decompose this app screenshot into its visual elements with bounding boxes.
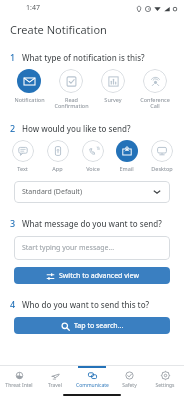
button[interactable]: Travel <box>37 366 73 390</box>
staticText: Conference Call <box>140 96 170 110</box>
staticText: Read Confirmation <box>54 96 89 110</box>
staticText: Notification <box>14 96 45 103</box>
staticText: Switch to advanced view <box>59 271 139 281</box>
button[interactable]: Survey <box>92 69 134 103</box>
button[interactable]: Switch to advanced view <box>14 267 170 284</box>
staticText: Settings <box>155 382 175 389</box>
staticText: Travel <box>48 382 62 389</box>
button[interactable]: App <box>41 140 74 172</box>
staticText: Desktop <box>151 165 173 172</box>
staticText: Who do you want to send this to? <box>22 299 150 310</box>
button[interactable]: Safety <box>111 366 147 390</box>
staticText: Communicate <box>76 382 109 389</box>
staticText: How would you like to send? <box>22 123 131 134</box>
button[interactable]: Standard (Default) <box>14 181 170 203</box>
button[interactable]: Threat Intel <box>1 366 37 390</box>
button[interactable]: Read Confirmation <box>50 69 92 110</box>
staticText: 1:47 <box>26 3 40 13</box>
staticText: Text <box>17 165 28 172</box>
staticText: 3 <box>10 217 16 229</box>
staticText: Threat Intel <box>5 382 33 389</box>
staticText: Survey <box>104 96 122 103</box>
button[interactable]: Start typing your message... <box>14 236 170 260</box>
staticText: Start typing your message... <box>22 243 115 253</box>
staticText: Safety <box>122 382 137 389</box>
staticText: App <box>52 165 63 172</box>
button[interactable]: Conference Call <box>134 69 176 110</box>
staticText: Standard (Default) <box>22 187 82 197</box>
staticText: 2 <box>10 122 16 134</box>
staticText: Create Notification <box>10 22 107 37</box>
button[interactable]: Notification <box>8 69 50 103</box>
button[interactable]: Tap to search... <box>14 317 170 334</box>
staticText: What type of notification is this? <box>22 52 145 63</box>
staticText: Tap to search... <box>74 321 124 331</box>
staticText: 1 <box>10 51 16 63</box>
button[interactable]: Settings <box>147 366 183 390</box>
button[interactable]: Communicate <box>74 366 110 390</box>
button[interactable]: Desktop <box>145 140 178 172</box>
staticText: 4 <box>10 298 16 310</box>
button[interactable]: Email <box>110 140 143 172</box>
staticText: Email <box>119 165 134 172</box>
staticText: What message do you want to send? <box>22 218 162 229</box>
staticText: Voice <box>86 165 100 172</box>
button[interactable]: Voice <box>76 140 109 172</box>
button[interactable]: Text <box>6 140 39 172</box>
